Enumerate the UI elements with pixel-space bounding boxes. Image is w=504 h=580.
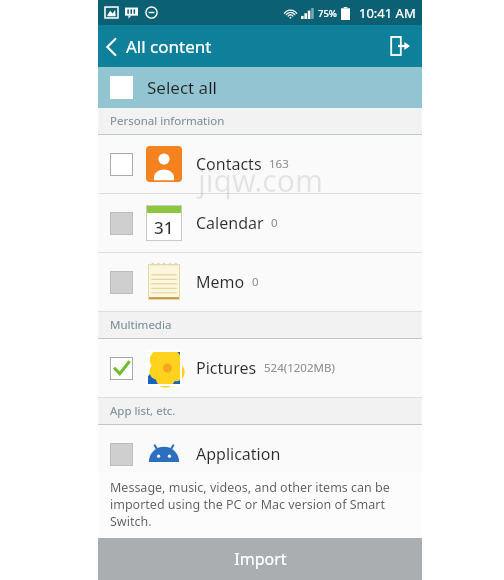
staticText: Contacts: [196, 153, 262, 175]
staticText: Multimedia: [110, 317, 172, 333]
staticText: Pictures: [196, 357, 257, 379]
button[interactable]: All content: [98, 29, 220, 64]
staticText: Calendar: [196, 212, 264, 234]
button[interactable]: Application: [98, 425, 422, 483]
staticText: Memo: [196, 271, 245, 293]
staticText: Select all: [147, 76, 217, 99]
button[interactable]: 31: [98, 194, 422, 252]
button[interactable]: Contacts: [98, 135, 422, 193]
staticText: jiqw.com: [198, 160, 323, 201]
staticText: Message, music, videos, and other items …: [110, 479, 412, 530]
staticText: 524(1202MB): [264, 360, 335, 376]
button[interactable]: Import: [98, 538, 422, 580]
staticText: 75%: [318, 7, 337, 20]
staticText: 0: [252, 274, 259, 290]
staticText: 10:41 AM: [359, 4, 416, 22]
button[interactable]: Export: [378, 30, 422, 62]
staticText: Personal information: [110, 113, 225, 129]
staticText: Application: [196, 443, 281, 465]
button[interactable]: Memo: [98, 253, 422, 311]
button[interactable]: Pictures: [98, 339, 422, 397]
staticText: 163: [269, 156, 289, 172]
staticText: 0: [271, 215, 278, 231]
staticText: All content: [126, 35, 212, 58]
staticText: Import: [234, 548, 287, 570]
staticText: 31: [154, 216, 174, 239]
button[interactable]: Select all: [98, 67, 422, 108]
staticText: App list, etc.: [110, 403, 176, 419]
